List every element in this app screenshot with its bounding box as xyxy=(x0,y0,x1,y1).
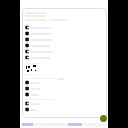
button[interactable] xyxy=(25,86,40,91)
button[interactable] xyxy=(25,107,36,112)
button[interactable] xyxy=(25,92,39,97)
button[interactable] xyxy=(25,101,40,106)
button[interactable] xyxy=(25,55,50,60)
button[interactable] xyxy=(25,25,51,30)
button[interactable] xyxy=(25,37,52,42)
button[interactable] xyxy=(25,43,50,48)
button[interactable]: Add item xyxy=(100,115,107,122)
button[interactable] xyxy=(25,80,39,85)
button[interactable] xyxy=(25,49,52,54)
button[interactable] xyxy=(25,31,51,36)
